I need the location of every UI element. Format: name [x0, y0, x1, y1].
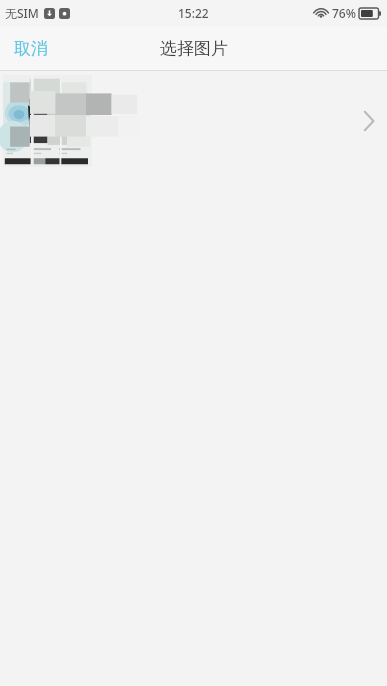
- staticText: 无SIM: [5, 5, 39, 21]
- button[interactable]: 取消: [0, 26, 62, 70]
- button[interactable]: 打开: [0, 71, 387, 171]
- staticText: 76%: [332, 5, 356, 21]
- staticText: 选择图片: [160, 38, 228, 59]
- staticText: 取消: [14, 38, 48, 59]
- other: 打开: [351, 71, 387, 171]
- staticText: 15:22: [178, 5, 209, 21]
